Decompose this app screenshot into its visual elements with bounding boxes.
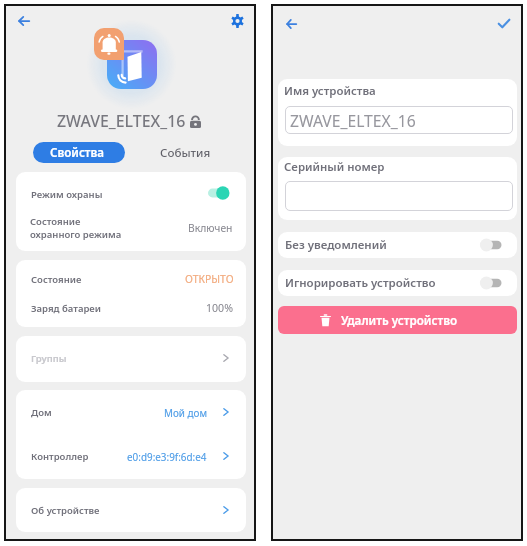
staticText: Без уведомлений — [285, 237, 387, 253]
staticText: Мой дом — [164, 406, 208, 419]
staticText: e0:d9:e3:9f:6d:e4 — [127, 450, 207, 463]
button[interactable] — [278, 232, 517, 258]
button[interactable] — [16, 488, 246, 532]
staticText: охранного режима — [30, 228, 122, 241]
button[interactable]: Settings — [225, 9, 249, 33]
button[interactable] — [278, 270, 517, 296]
staticText: ОТКРЫТО — [185, 272, 234, 286]
staticText: Дом — [31, 406, 52, 419]
staticText: Контроллер — [31, 450, 89, 463]
button[interactable] — [16, 212, 246, 251]
button[interactable] — [285, 181, 513, 211]
staticText: Включен — [188, 221, 233, 235]
staticText: Состояние — [30, 215, 81, 228]
staticText: Имя устройства — [284, 83, 376, 99]
staticText: Группы — [31, 352, 67, 365]
button[interactable]: Save — [492, 12, 515, 35]
staticText: Игнорировать устройство — [285, 275, 436, 291]
button[interactable] — [16, 390, 246, 435]
button[interactable] — [16, 294, 246, 328]
staticText: Удалить устройство — [341, 312, 458, 328]
staticText: Заряд батареи — [31, 302, 102, 315]
staticText: Об устройстве — [31, 504, 100, 517]
staticText: Свойства — [50, 145, 105, 161]
button[interactable]: ZWAVE_ELTEX_16 — [285, 106, 513, 134]
button[interactable]: События — [141, 142, 230, 163]
button[interactable]: Back — [11, 8, 36, 33]
button[interactable] — [16, 172, 246, 212]
staticText: 100% — [206, 301, 233, 315]
staticText: Режим охраны — [31, 188, 103, 201]
button[interactable]: Back — [280, 12, 303, 35]
staticText: Состояние — [31, 273, 82, 286]
staticText: События — [160, 145, 211, 161]
staticText: Серийный номер — [284, 159, 385, 175]
staticText: ZWAVE_ELTEX_16 — [290, 110, 416, 131]
button[interactable]: Свойства — [33, 142, 125, 163]
staticText: ZWAVE_ELTEX_16 — [57, 110, 186, 132]
button[interactable] — [16, 434, 246, 479]
button[interactable] — [16, 260, 246, 293]
button[interactable] — [16, 336, 246, 382]
button[interactable]: Удалить устройство — [278, 306, 517, 334]
